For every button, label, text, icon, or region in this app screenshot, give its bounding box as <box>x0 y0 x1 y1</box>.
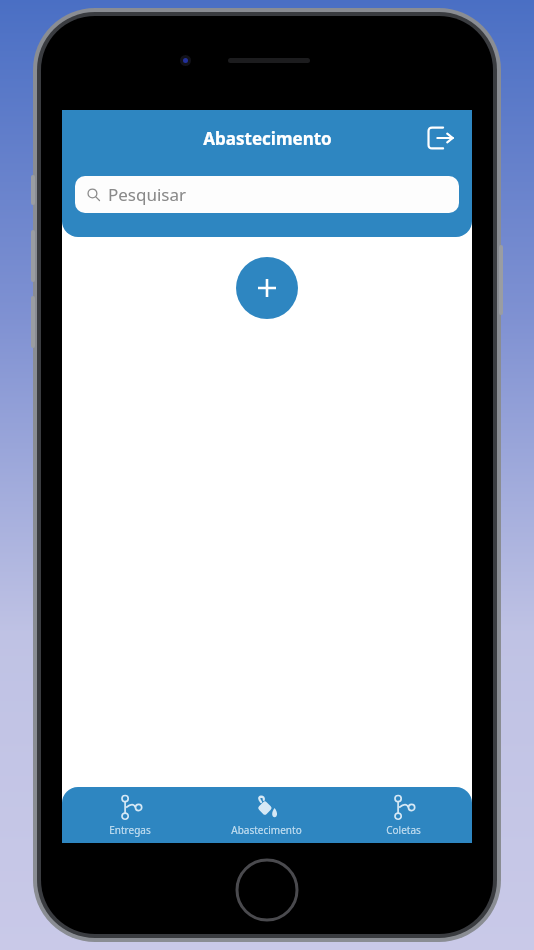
button[interactable]: Pesquisar <box>75 176 459 213</box>
button[interactable]: Entregas <box>62 787 198 843</box>
staticText: Coletas <box>386 823 421 837</box>
staticText: Abastecimento <box>231 823 302 837</box>
button[interactable]: Adicionar <box>236 257 298 319</box>
staticText: Pesquisar <box>108 183 187 206</box>
button[interactable]: Coletas <box>335 787 472 843</box>
staticText: Abastecimento <box>203 127 332 150</box>
staticText: Entregas <box>109 823 151 837</box>
button[interactable]: Sair <box>424 121 458 155</box>
button[interactable]: Abastecimento <box>198 787 335 843</box>
